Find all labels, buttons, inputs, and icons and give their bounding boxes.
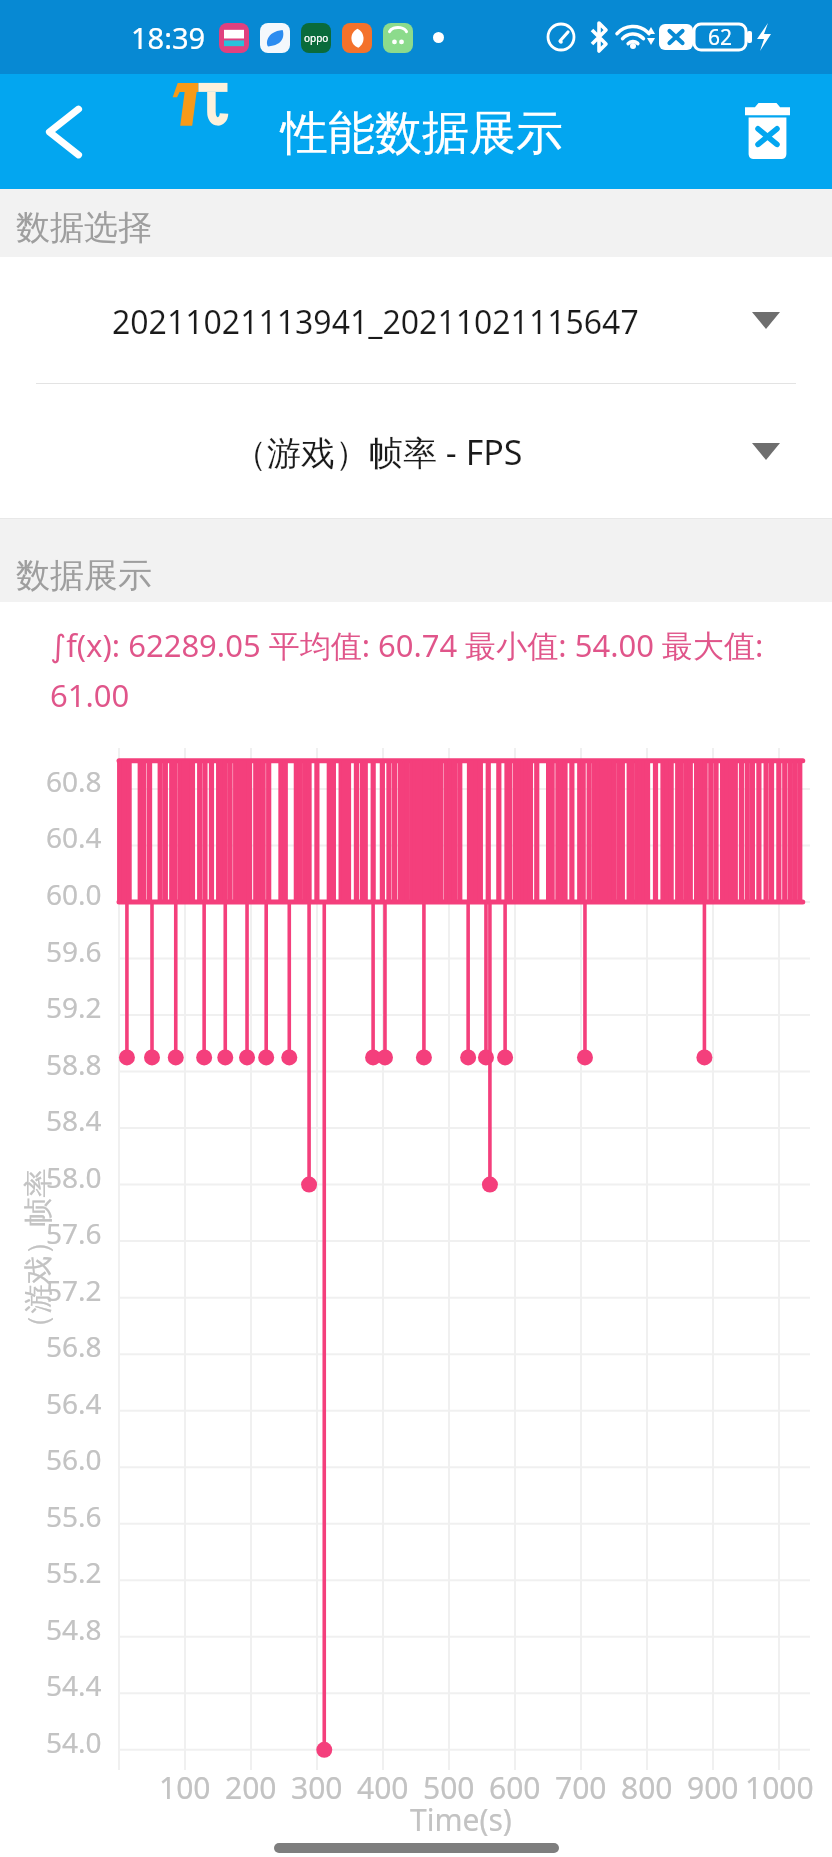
staticText: 55.2 bbox=[46, 1553, 102, 1591]
staticText: 57.2 bbox=[46, 1271, 102, 1309]
staticText: 60.8 bbox=[46, 762, 102, 800]
staticText: 60.0 bbox=[46, 875, 102, 913]
staticText: （游戏）帧率 - FPS bbox=[233, 429, 523, 475]
staticText: 数据展示 bbox=[16, 554, 152, 597]
staticText: 200 bbox=[225, 1767, 277, 1808]
staticText: 54.4 bbox=[46, 1666, 102, 1704]
staticText: 60.4 bbox=[46, 818, 102, 856]
staticText: 1000 bbox=[745, 1767, 814, 1808]
staticText: （游戏）帧率 bbox=[19, 1168, 56, 1342]
staticText: 58.0 bbox=[46, 1158, 102, 1196]
staticText: 57.6 bbox=[46, 1214, 102, 1252]
staticText: 20211021113941_20211021115647 bbox=[112, 300, 639, 344]
staticText: 300 bbox=[291, 1767, 343, 1808]
staticText: 400 bbox=[357, 1767, 409, 1808]
staticText: 100 bbox=[159, 1767, 211, 1808]
staticText: 600 bbox=[489, 1767, 541, 1808]
staticText: 54.0 bbox=[46, 1723, 102, 1761]
staticText: Time(s) bbox=[410, 1799, 512, 1840]
staticText: 55.6 bbox=[46, 1497, 102, 1535]
staticText: ∫f(x): 62289.05 平均值: 60.74 最小值: 54.00 最大… bbox=[50, 624, 792, 716]
staticText: 59.6 bbox=[46, 932, 102, 970]
staticText: 56.4 bbox=[46, 1384, 102, 1422]
staticText: 58.8 bbox=[46, 1045, 102, 1083]
staticText: 62 bbox=[708, 23, 733, 52]
staticText: 性能数据展示 bbox=[281, 104, 563, 163]
button[interactable]: Back bbox=[21, 89, 106, 174]
button[interactable]: 20211021113941_20211021115647 bbox=[0, 257, 832, 383]
button[interactable]: Delete bbox=[730, 94, 804, 168]
staticText: 900 bbox=[687, 1767, 739, 1808]
staticText: 数据选择 bbox=[16, 206, 152, 249]
staticText: 56.8 bbox=[46, 1327, 102, 1365]
staticText: 800 bbox=[621, 1767, 673, 1808]
staticText: 54.8 bbox=[46, 1610, 102, 1648]
staticText: 18:39 bbox=[131, 18, 206, 57]
staticText: 500 bbox=[423, 1767, 475, 1808]
staticText: 58.4 bbox=[46, 1101, 102, 1139]
staticText: 56.0 bbox=[46, 1440, 102, 1478]
button[interactable]: （游戏）帧率 - FPS bbox=[0, 384, 832, 518]
staticText: oppo bbox=[304, 31, 329, 45]
staticText: 700 bbox=[555, 1767, 607, 1808]
staticText: 59.2 bbox=[46, 988, 102, 1026]
